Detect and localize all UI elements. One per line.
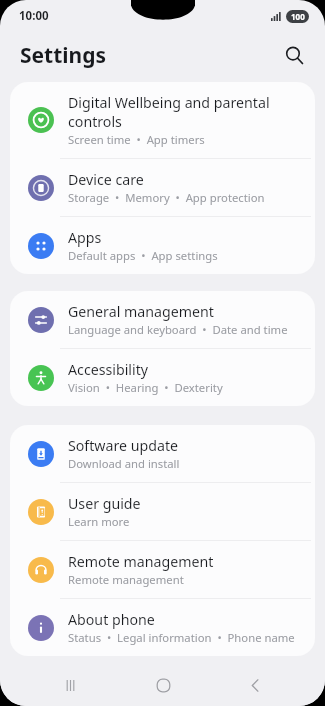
button[interactable]: Software update (10, 425, 315, 482)
staticText: General management (68, 302, 214, 321)
staticText: Remote management (68, 572, 184, 587)
staticText: Language and keyboard • Date and time (68, 322, 288, 337)
staticText: Software update (68, 436, 179, 455)
staticText: Download and install (68, 456, 180, 471)
staticText: Learn more (68, 514, 130, 529)
button[interactable]: User guide (10, 483, 315, 540)
staticText: Status • Legal information • Phone name (68, 630, 295, 645)
staticText: Remote management (68, 552, 214, 571)
button[interactable]: Apps (10, 217, 315, 274)
button[interactable]: Recent apps (47, 664, 93, 706)
staticText: About phone (68, 610, 155, 629)
button[interactable]: Remote management (10, 541, 315, 598)
button[interactable]: General management (10, 291, 315, 348)
button[interactable]: Search (277, 38, 311, 72)
button[interactable]: Back (232, 664, 278, 706)
staticText: Settings (20, 41, 107, 70)
button[interactable]: About phone (10, 599, 315, 656)
button[interactable]: Home (140, 664, 186, 706)
staticText: Accessibility (68, 360, 149, 379)
button[interactable]: Device care (10, 159, 315, 216)
staticText: 10:00 (19, 8, 49, 24)
staticText: User guide (68, 494, 141, 513)
staticText: Default apps • App settings (68, 248, 218, 263)
button[interactable]: Accessibility (10, 349, 315, 406)
staticText: Screen time • App timers (68, 132, 205, 147)
staticText: Apps (68, 228, 102, 247)
button[interactable]: Digital Wellbeing and parental controls (10, 82, 315, 158)
staticText: Storage • Memory • App protection (68, 190, 265, 205)
staticText: Vision • Hearing • Dexterity (68, 380, 223, 395)
staticText: Device care (68, 170, 144, 189)
staticText: Digital Wellbeing and parental controls (68, 93, 301, 131)
staticText: 100 (291, 11, 305, 22)
